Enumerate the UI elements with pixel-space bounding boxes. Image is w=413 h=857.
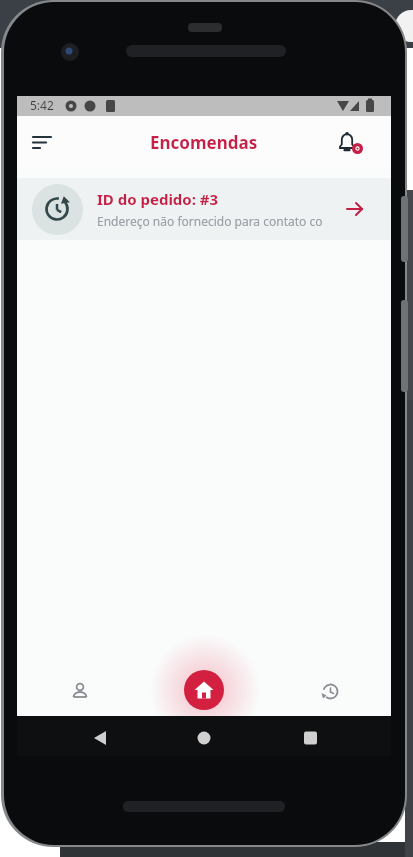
button[interactable] — [314, 675, 346, 707]
staticText: Encomendas — [150, 131, 258, 154]
staticText: Endereço não fornecido para contato co — [97, 213, 323, 229]
button[interactable] — [333, 128, 365, 160]
button[interactable] — [184, 670, 224, 710]
button[interactable]: ID do pedido: #3 — [17, 178, 391, 240]
button[interactable] — [64, 675, 96, 707]
staticText: 5:42 — [30, 97, 54, 113]
button[interactable] — [27, 126, 59, 158]
staticText: ID do pedido: #3 — [97, 189, 219, 209]
